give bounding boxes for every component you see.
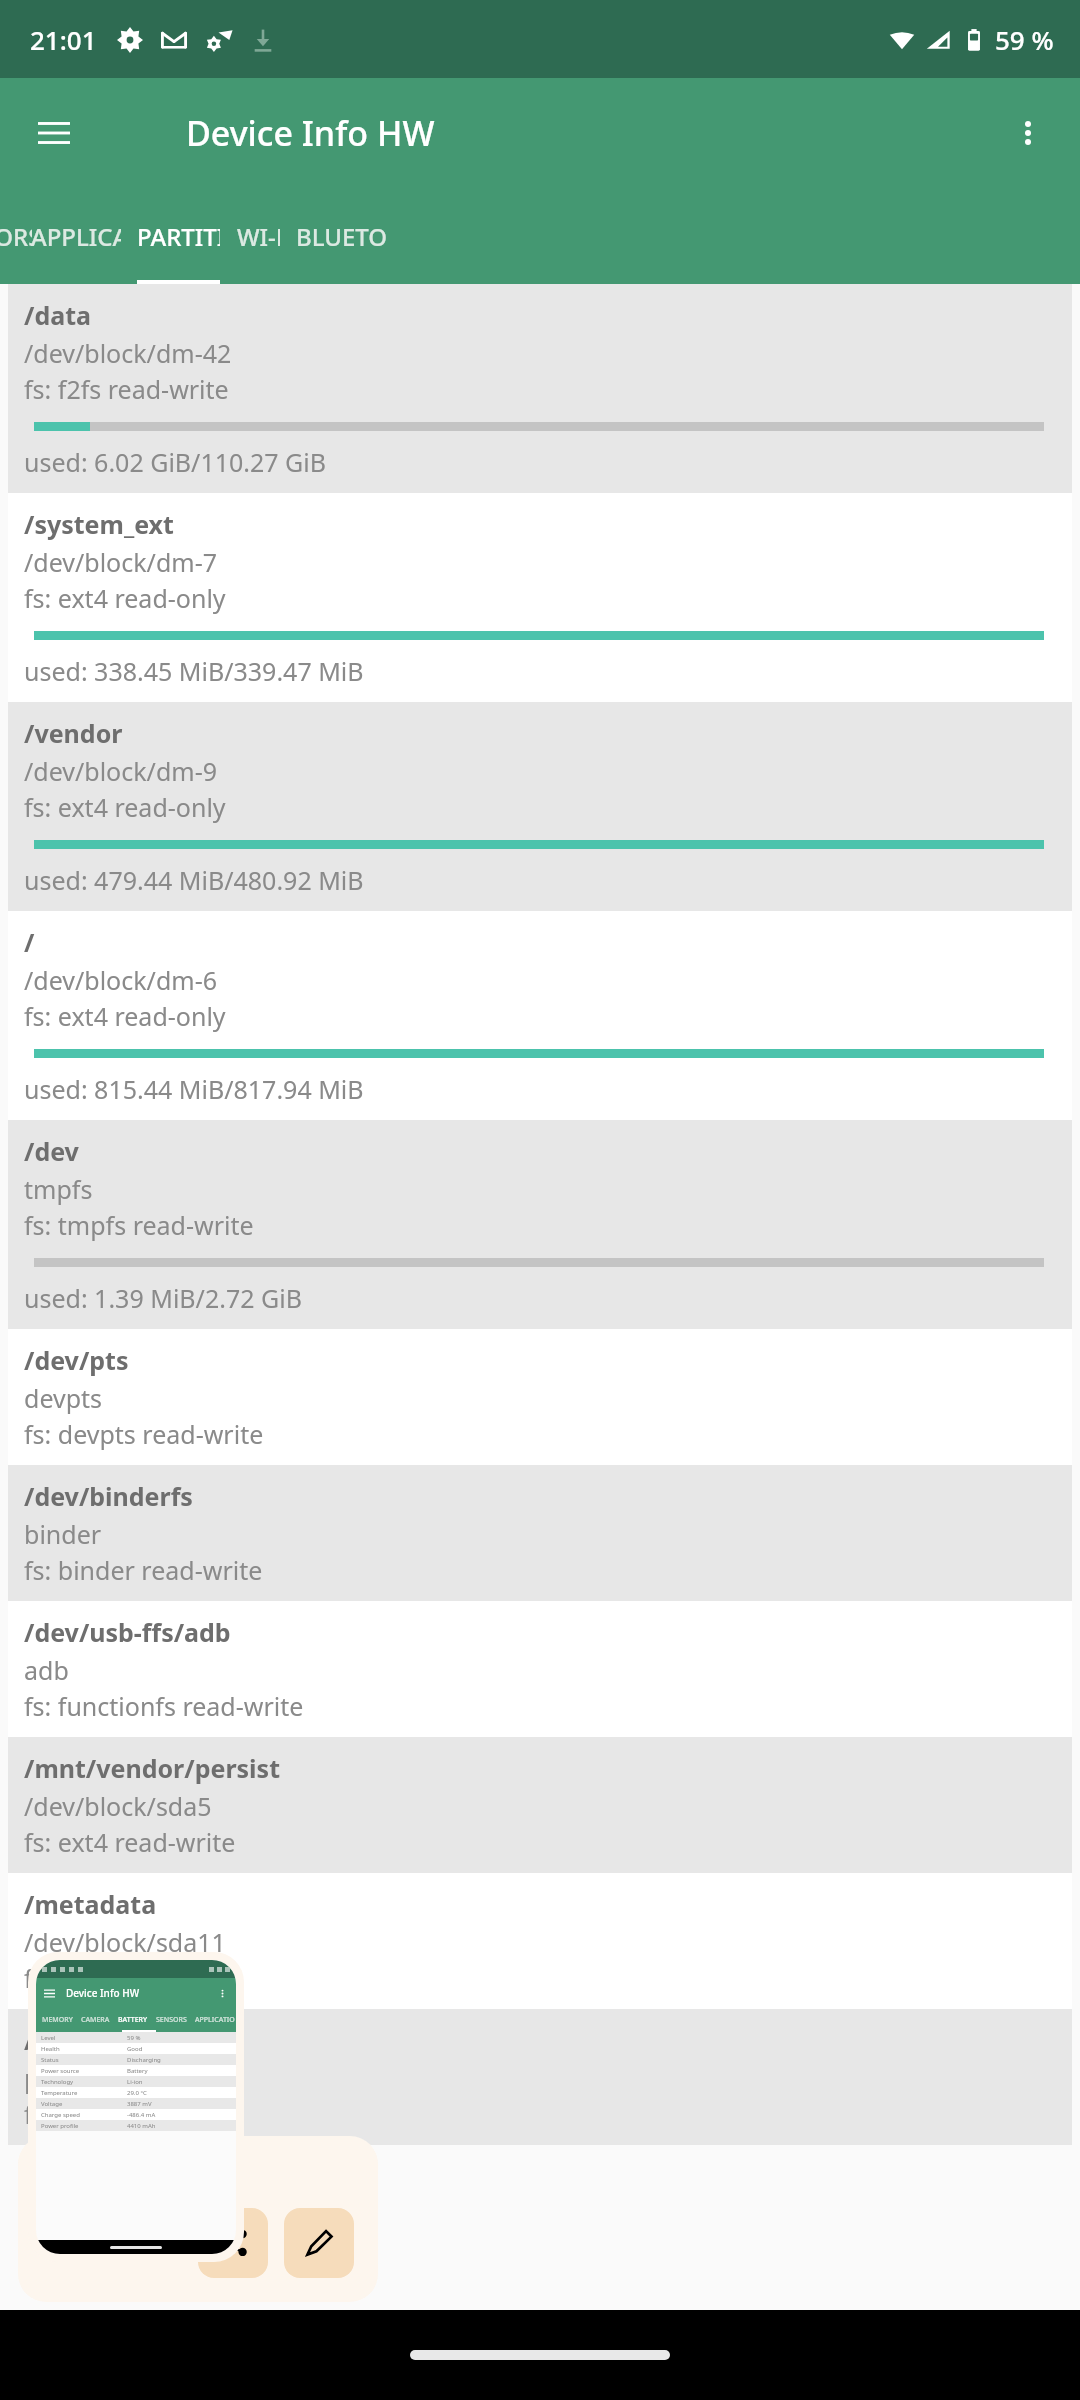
button[interactable]: BLUETOOTH [296,188,386,284]
staticText: /metadata [24,1887,157,1921]
staticText: fs: binder read-write [24,1553,263,1587]
staticText: 59 % [127,2034,231,2042]
staticText: fs: ext4 read-only [24,581,226,615]
staticText: BATTERY [118,2015,148,2025]
staticText: SORS [0,220,32,253]
button[interactable]: /data [8,284,1072,493]
staticText: Status [41,2056,127,2064]
button[interactable]: SORS [0,188,32,284]
staticText: 21:01 [30,22,97,57]
staticText: Power source [41,2067,127,2075]
staticText: used: 6.02 GiB/110.27 GiB [24,445,327,479]
button[interactable]: /metadata [8,1873,1072,2009]
staticText: /dev/block/dm-7 [24,545,217,579]
staticText: /dev/block/dm-9 [24,754,217,788]
staticText: Device Info HW [66,1986,140,2000]
staticText: Level [41,2034,127,2042]
staticText: Technology [41,2078,127,2086]
staticText: MEMORY [42,2015,73,2025]
staticText: /data [24,298,91,332]
staticText: proc [24,2061,77,2095]
staticText: /dev [24,1134,79,1168]
staticText: /dev/pts [24,1343,129,1377]
button[interactable]: WI-FI [237,188,280,284]
staticText: Voltage [41,2100,127,2108]
button[interactable]: /dev/binderfs [8,1465,1072,1601]
button[interactable]: APPLICATIONS [31,188,121,284]
staticText: /dev/usb-ffs/adb [24,1615,231,1649]
staticText: Li-ion [127,2078,231,2086]
staticText: 59 % [995,22,1054,57]
staticText: PARTITIONS [137,220,220,253]
staticText: fs: tmpfs read-write [24,1208,254,1242]
staticText: Device Info HW [186,110,435,156]
staticText: Good [127,2045,231,2053]
button[interactable]: More options [996,101,1060,165]
staticText: /dev/block/sda5 [24,1789,212,1823]
staticText: /dev/block/dm-6 [24,963,217,997]
button[interactable]: Edit [284,2208,354,2278]
button[interactable]: Open navigation menu [22,101,86,165]
staticText: APPLICATIO [195,2015,235,2025]
staticText: fs: f2fs read-write [24,372,229,406]
staticText: /proc [24,2023,90,2057]
staticText: /dev/block/sda11 [24,1925,226,1959]
button[interactable]: /system_ext [8,493,1072,702]
button[interactable]: /vendor [8,702,1072,911]
staticText: binder [24,1517,102,1551]
button[interactable]: PARTITIONS [137,188,220,284]
staticText: fs: functionfs read-write [24,1689,304,1723]
staticText: Discharging [127,2056,231,2064]
staticText: Battery [127,2067,231,2075]
button[interactable]: /proc [8,2009,1072,2145]
button[interactable]: Home gesture bar [410,2350,670,2360]
staticText: Health [41,2045,127,2053]
staticText: BLUETOOTH [296,220,386,253]
staticText: 3887 mV [127,2100,231,2108]
staticText: / [24,925,35,959]
staticText: tmpfs [24,1172,93,1206]
button[interactable]: /dev/usb-ffs/adb [8,1601,1072,1737]
staticText: used: 479.44 MiB/480.92 MiB [24,863,364,897]
staticText: /vendor [24,716,123,750]
button[interactable]: /dev [8,1120,1072,1329]
staticText: fs: ext4 read-write [24,1825,236,1859]
button[interactable]: Share [198,2208,268,2278]
staticText: /dev/block/dm-42 [24,336,232,370]
staticText: APPLICATIONS [31,220,121,253]
staticText: fs: devpts read-write [24,1417,264,1451]
staticText: CAMERA [81,2015,110,2025]
staticText: fs: proc read-write [24,2097,238,2131]
staticText: Power profile [41,2122,127,2130]
staticText: /system_ext [24,507,174,541]
staticText: fs: ext4 read-only [24,999,226,1033]
staticText: /dev/binderfs [24,1479,193,1513]
staticText: Charge speed [41,2111,127,2119]
staticText: SENSORS [156,2015,187,2025]
staticText: -486.4 mA [127,2111,231,2119]
button[interactable]: Screenshot preview [36,1960,236,2254]
button[interactable]: / [8,911,1072,1120]
staticText: /mnt/vendor/persist [24,1751,280,1785]
staticText: adb [24,1653,69,1687]
staticText: 29.0 °C [127,2089,231,2097]
staticText: devpts [24,1381,103,1415]
staticText: Temperature [41,2089,127,2097]
button[interactable]: /dev/pts [8,1329,1072,1465]
staticText: used: 1.39 MiB/2.72 GiB [24,1281,302,1315]
button[interactable]: /mnt/vendor/persist [8,1737,1072,1873]
staticText: used: 338.45 MiB/339.47 MiB [24,654,364,688]
staticText: WI-FI [237,220,280,253]
staticText: used: 815.44 MiB/817.94 MiB [24,1072,364,1106]
staticText: 4410 mAh [127,2122,231,2130]
staticText: fs: ext4 read-only [24,790,226,824]
staticText: fs: ext4 read-write [24,1961,236,1995]
